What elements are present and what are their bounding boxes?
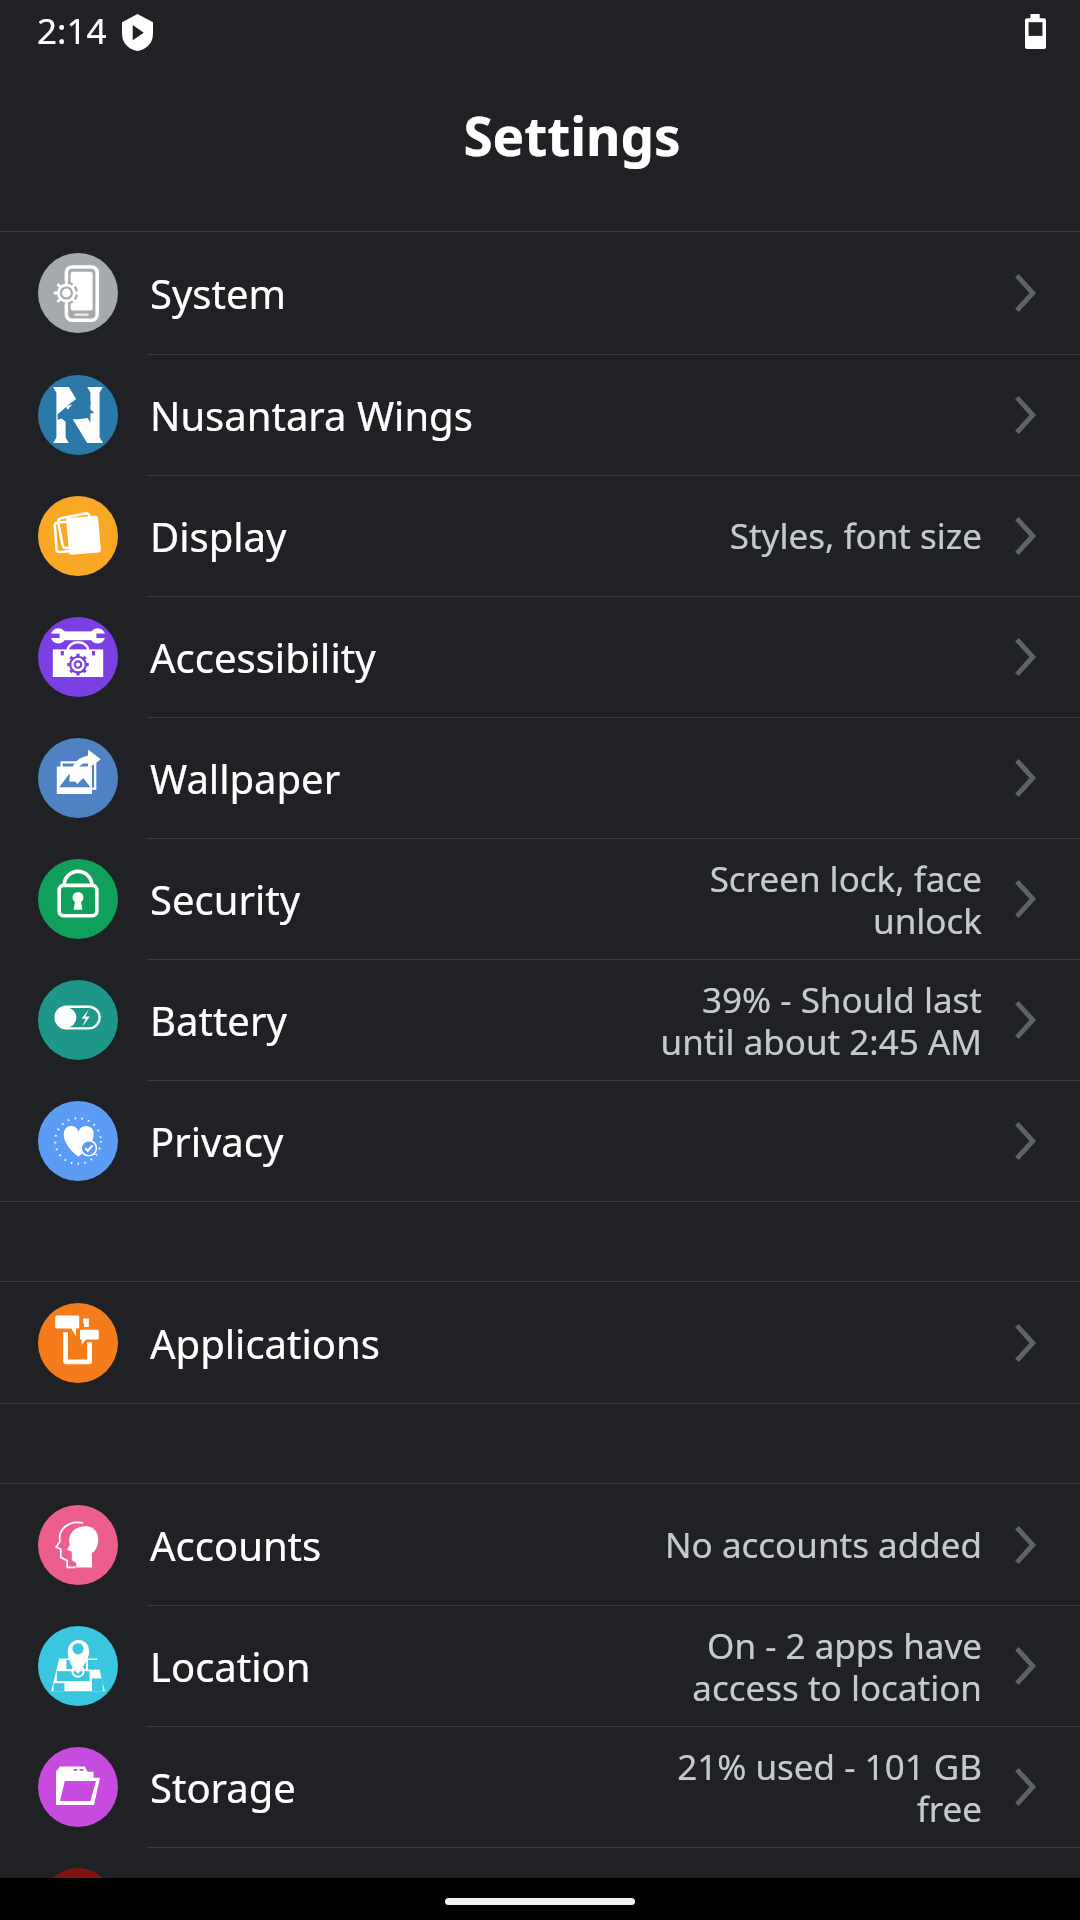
button[interactable]: System	[0, 232, 1080, 354]
button[interactable]: Nusantara Wings	[0, 355, 1080, 475]
staticText: Settings	[463, 99, 681, 171]
button[interactable]	[0, 1848, 1080, 1920]
button[interactable]: Location	[0, 1606, 1080, 1726]
staticText: Accessibility	[150, 630, 376, 684]
button[interactable]: Wallpaper	[0, 718, 1080, 838]
button[interactable]: Applications	[0, 1282, 1080, 1403]
button[interactable]: Accounts	[0, 1484, 1080, 1605]
staticText: Privacy	[150, 1114, 284, 1168]
staticText: Nusantara Wings	[150, 388, 473, 442]
staticText: On - 2 apps have access to location	[638, 1622, 982, 1711]
staticText: Battery	[150, 993, 287, 1047]
button[interactable]: Battery	[0, 960, 1080, 1080]
staticText: 39% - Should last until about 2:45 AM	[638, 976, 982, 1065]
staticText: Screen lock, face unlock	[638, 855, 982, 944]
staticText: Security	[150, 872, 301, 926]
staticText: 2:14	[37, 7, 107, 55]
staticText: Wallpaper	[150, 751, 341, 805]
button[interactable]: Privacy	[0, 1081, 1080, 1201]
button[interactable]: Display	[0, 476, 1080, 596]
button[interactable]: Accessibility	[0, 597, 1080, 717]
button[interactable]: Storage	[0, 1727, 1080, 1847]
staticText: Storage	[150, 1760, 296, 1814]
staticText: System	[150, 266, 286, 320]
button[interactable]: Security	[0, 839, 1080, 959]
staticText: No accounts added	[665, 1521, 982, 1569]
staticText: Applications	[150, 1316, 380, 1370]
staticText: Accounts	[150, 1518, 322, 1572]
staticText: Display	[150, 509, 287, 563]
staticText: Styles, font size	[729, 512, 982, 560]
staticText: Location	[150, 1639, 311, 1693]
staticText: 21% used - 101 GB free	[638, 1743, 982, 1832]
